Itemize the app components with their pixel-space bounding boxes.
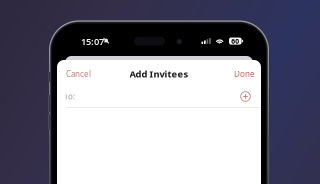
staticText: 15:07 [81, 35, 104, 48]
staticText: Add Invitees [129, 68, 188, 80]
staticText: 60 [231, 37, 239, 45]
button[interactable]: Done [229, 65, 257, 83]
staticText: To: [64, 91, 75, 102]
staticText: Cancel [66, 69, 91, 79]
staticText: Done [234, 69, 255, 79]
button[interactable]: Add contact [237, 88, 254, 105]
button[interactable]: Cancel [61, 65, 96, 83]
